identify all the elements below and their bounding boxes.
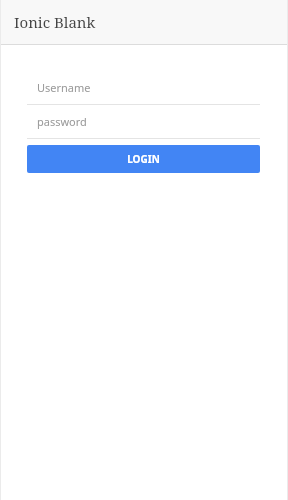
staticText: Username bbox=[37, 80, 91, 95]
button[interactable]: password bbox=[27, 105, 260, 139]
staticText: password bbox=[37, 114, 87, 129]
staticText: LOGIN bbox=[127, 152, 160, 166]
button[interactable]: Username bbox=[27, 71, 260, 105]
button[interactable]: LOGIN bbox=[27, 145, 260, 173]
staticText: Ionic Blank bbox=[14, 12, 96, 32]
